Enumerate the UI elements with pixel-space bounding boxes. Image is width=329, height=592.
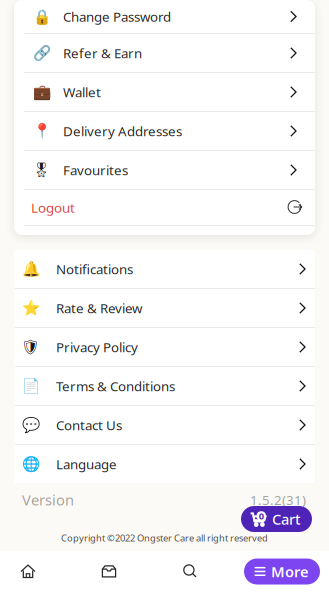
staticText: Delivery Addresses	[63, 122, 182, 140]
button[interactable]: Search	[163, 551, 217, 592]
staticText: 0	[259, 510, 264, 522]
button[interactable]: 💬	[14, 406, 315, 444]
staticText: 🔔	[21, 261, 39, 277]
button[interactable]: 📍	[14, 112, 315, 150]
staticText: Favourites	[63, 161, 128, 179]
staticText: 1.5.2(31)	[250, 491, 306, 509]
button[interactable]: 🌐	[14, 445, 315, 483]
staticText: Language	[56, 455, 117, 473]
button[interactable]: ⭐	[14, 289, 315, 327]
button[interactable]: 🔒	[14, 0, 315, 33]
button[interactable]: 📄	[14, 367, 315, 405]
staticText: Rate & Review	[56, 299, 142, 317]
staticText: 🔒	[32, 8, 50, 25]
button[interactable]: 🛡	[14, 328, 315, 366]
staticText: 💼	[32, 84, 50, 100]
staticText: Copyright ©2022 Ongster Care all right r…	[61, 532, 268, 544]
button[interactable]: 🔔	[14, 250, 315, 288]
staticText: Terms & Conditions	[56, 377, 175, 395]
staticText: Notifications	[56, 260, 133, 278]
staticText: Cart	[272, 509, 301, 529]
staticText: Refer & Earn	[63, 44, 142, 62]
button[interactable]: 🎖	[14, 151, 315, 189]
button[interactable]: More	[244, 558, 320, 584]
staticText: Change Password	[63, 8, 171, 25]
staticText: ⭐	[21, 300, 39, 316]
button[interactable]: Logout	[14, 190, 315, 225]
staticText: Privacy Policy	[56, 338, 138, 356]
button[interactable]: 💼	[14, 73, 315, 111]
staticText: 📄	[21, 378, 39, 394]
staticText: 📍	[32, 123, 50, 139]
staticText: Version	[22, 490, 74, 509]
staticText: 🎖	[32, 162, 51, 178]
staticText: 🔗	[32, 45, 50, 61]
staticText: 💬	[21, 417, 39, 433]
staticText: More	[271, 562, 309, 581]
staticText: Contact Us	[56, 416, 122, 434]
staticText: 🛡	[21, 339, 40, 355]
button[interactable]: 0	[241, 506, 312, 532]
button[interactable]: Home	[1, 551, 55, 592]
staticText: Wallet	[63, 83, 101, 101]
button[interactable]: Orders	[82, 551, 136, 592]
staticText: 🌐	[21, 456, 39, 472]
button[interactable]: 🔗	[14, 34, 315, 72]
staticText: Logout	[31, 199, 75, 216]
